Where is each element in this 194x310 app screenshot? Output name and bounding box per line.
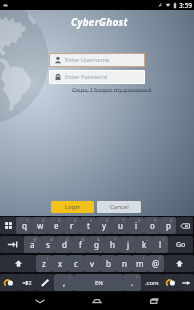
staticText: u (118, 220, 123, 231)
staticText: ( (163, 237, 165, 243)
staticText: $ (66, 237, 69, 243)
button[interactable]: o (144, 217, 160, 234)
staticText: Cancel (110, 203, 129, 211)
button[interactable]: h (104, 236, 120, 253)
button[interactable] (36, 274, 54, 291)
button[interactable]: Cancel (97, 201, 141, 213)
button[interactable] (163, 274, 178, 291)
staticText: @ (152, 258, 160, 269)
button[interactable] (0, 255, 36, 272)
button[interactable]: Login (51, 201, 94, 213)
button[interactable]: y (96, 217, 112, 234)
button[interactable] (178, 274, 194, 291)
button[interactable]: Go (168, 236, 193, 253)
button[interactable]: z (36, 255, 52, 272)
staticText: CyberGhost (71, 15, 128, 29)
staticText: @ (33, 237, 37, 243)
staticText: w (37, 220, 44, 231)
staticText: d (62, 239, 67, 250)
staticText: * (114, 237, 117, 243)
button[interactable]: p (160, 217, 176, 234)
button[interactable]: n (116, 255, 132, 272)
staticText: Login (65, 203, 81, 211)
staticText: a (30, 239, 35, 250)
staticText: 3:59 (179, 1, 192, 10)
button[interactable]: s (40, 236, 56, 253)
button[interactable]: l (152, 236, 168, 253)
button[interactable]: v (84, 255, 100, 272)
button[interactable]: a (24, 236, 40, 253)
button[interactable]: Recent apps (137, 292, 171, 310)
button[interactable]: Enter Username (50, 54, 144, 66)
staticText: _ (63, 256, 65, 262)
button[interactable] (164, 255, 194, 272)
button[interactable] (0, 217, 16, 234)
button[interactable]: u (112, 217, 128, 234)
staticText: z (42, 258, 46, 269)
staticText: EN (95, 279, 103, 287)
staticText: s (46, 239, 50, 250)
staticText: # (50, 237, 53, 243)
staticText: 4 (74, 218, 77, 224)
staticText: 2 (42, 218, 45, 224)
staticText: ; (127, 256, 129, 262)
button[interactable]: , (54, 274, 74, 291)
staticText: ? (159, 256, 161, 262)
staticText: : (111, 256, 113, 262)
button[interactable]: Oops, I forgot my password (72, 85, 152, 93)
staticText: t (87, 220, 90, 231)
staticText: % (81, 237, 85, 243)
staticText: j (127, 239, 130, 250)
button[interactable]: Hide keyboard (23, 292, 57, 310)
staticText: c (74, 258, 78, 269)
staticText: 5 (90, 218, 93, 224)
staticText: x (58, 258, 63, 269)
staticText: " (79, 256, 81, 262)
button[interactable]: q (16, 217, 32, 234)
button[interactable]: k (136, 236, 152, 253)
button[interactable] (0, 236, 24, 253)
button[interactable]: i (128, 217, 144, 234)
button[interactable]: e (48, 217, 64, 234)
staticText: - (131, 237, 133, 243)
staticText: 0 (170, 218, 173, 224)
button[interactable]: w (32, 217, 48, 234)
button[interactable]: EN (74, 274, 123, 291)
staticText: 8 (138, 218, 141, 224)
button[interactable]: t (80, 217, 96, 234)
staticText: p (166, 220, 171, 231)
staticText: 6 (106, 218, 109, 224)
staticText: n (122, 258, 127, 269)
button[interactable]: .com (141, 274, 163, 291)
button[interactable]: Enter Password (50, 71, 144, 83)
button[interactable]: g (88, 236, 104, 253)
button[interactable] (176, 217, 193, 234)
button[interactable]: @ (148, 255, 164, 272)
button[interactable] (18, 274, 36, 291)
staticText: Enter Password (65, 73, 108, 81)
staticText: b (106, 258, 111, 269)
staticText: g (94, 239, 99, 250)
button[interactable]: b (100, 255, 116, 272)
button[interactable]: c (68, 255, 84, 272)
button[interactable] (0, 274, 18, 291)
staticText: r (70, 220, 74, 231)
staticText: o (150, 220, 155, 231)
staticText: Enter Username (65, 56, 110, 64)
staticText: k (142, 239, 147, 250)
button[interactable]: d (56, 236, 72, 253)
staticText: v (90, 258, 95, 269)
button[interactable]: f (72, 236, 88, 253)
staticText: ! (143, 256, 145, 262)
staticText: e (54, 220, 59, 231)
button[interactable]: Home (80, 292, 114, 310)
button[interactable]: r (64, 217, 80, 234)
staticText: 7 (122, 218, 125, 224)
button[interactable]: j (120, 236, 136, 253)
button[interactable]: m (132, 255, 148, 272)
staticText: , (63, 277, 66, 288)
staticText: 1 (26, 218, 29, 224)
staticText: Go (176, 240, 186, 250)
button[interactable]: . (123, 274, 141, 291)
button[interactable]: x (52, 255, 68, 272)
